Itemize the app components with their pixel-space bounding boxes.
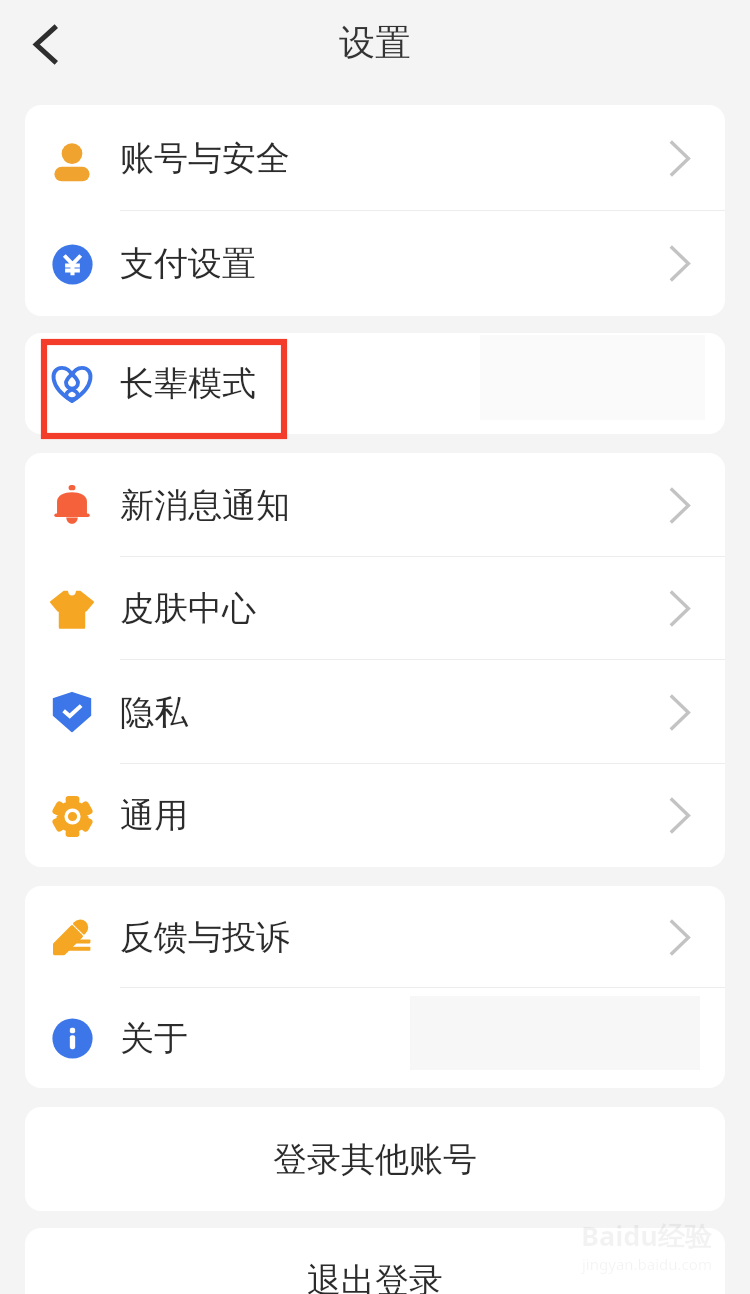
staticText: 长辈模式 — [120, 362, 256, 405]
button[interactable]: Back — [14, 13, 76, 75]
staticText: 皮肤中心 — [120, 587, 256, 630]
button[interactable]: 账号与安全 — [25, 105, 725, 211]
staticText: 新消息通知 — [120, 484, 290, 527]
staticText: 账号与安全 — [120, 137, 290, 180]
staticText: 支付设置 — [120, 242, 256, 285]
button[interactable]: 支付设置 — [25, 211, 725, 316]
staticText: jingyan.baidu.com — [582, 1254, 712, 1274]
button[interactable]: 长辈模式 — [25, 333, 725, 434]
button[interactable]: 隐私 — [25, 660, 725, 764]
staticText: 退出登录 — [307, 1259, 443, 1294]
staticText: 关于 — [120, 1017, 188, 1060]
button[interactable]: 登录其他账号 — [25, 1107, 725, 1211]
button[interactable]: 新消息通知 — [25, 453, 725, 557]
button[interactable]: 反馈与投诉 — [25, 886, 725, 988]
staticText: 登录其他账号 — [273, 1138, 477, 1181]
staticText: 隐私 — [120, 691, 188, 734]
button[interactable]: 皮肤中心 — [25, 557, 725, 660]
button[interactable]: 通用 — [25, 764, 725, 867]
staticText: 设置 — [339, 20, 411, 65]
button[interactable]: 关于 — [25, 988, 725, 1088]
staticText: 通用 — [120, 794, 188, 837]
staticText: Baidu经验 — [581, 1217, 712, 1254]
button[interactable]: 退出登录 — [25, 1228, 725, 1294]
staticText: 反馈与投诉 — [120, 916, 290, 959]
